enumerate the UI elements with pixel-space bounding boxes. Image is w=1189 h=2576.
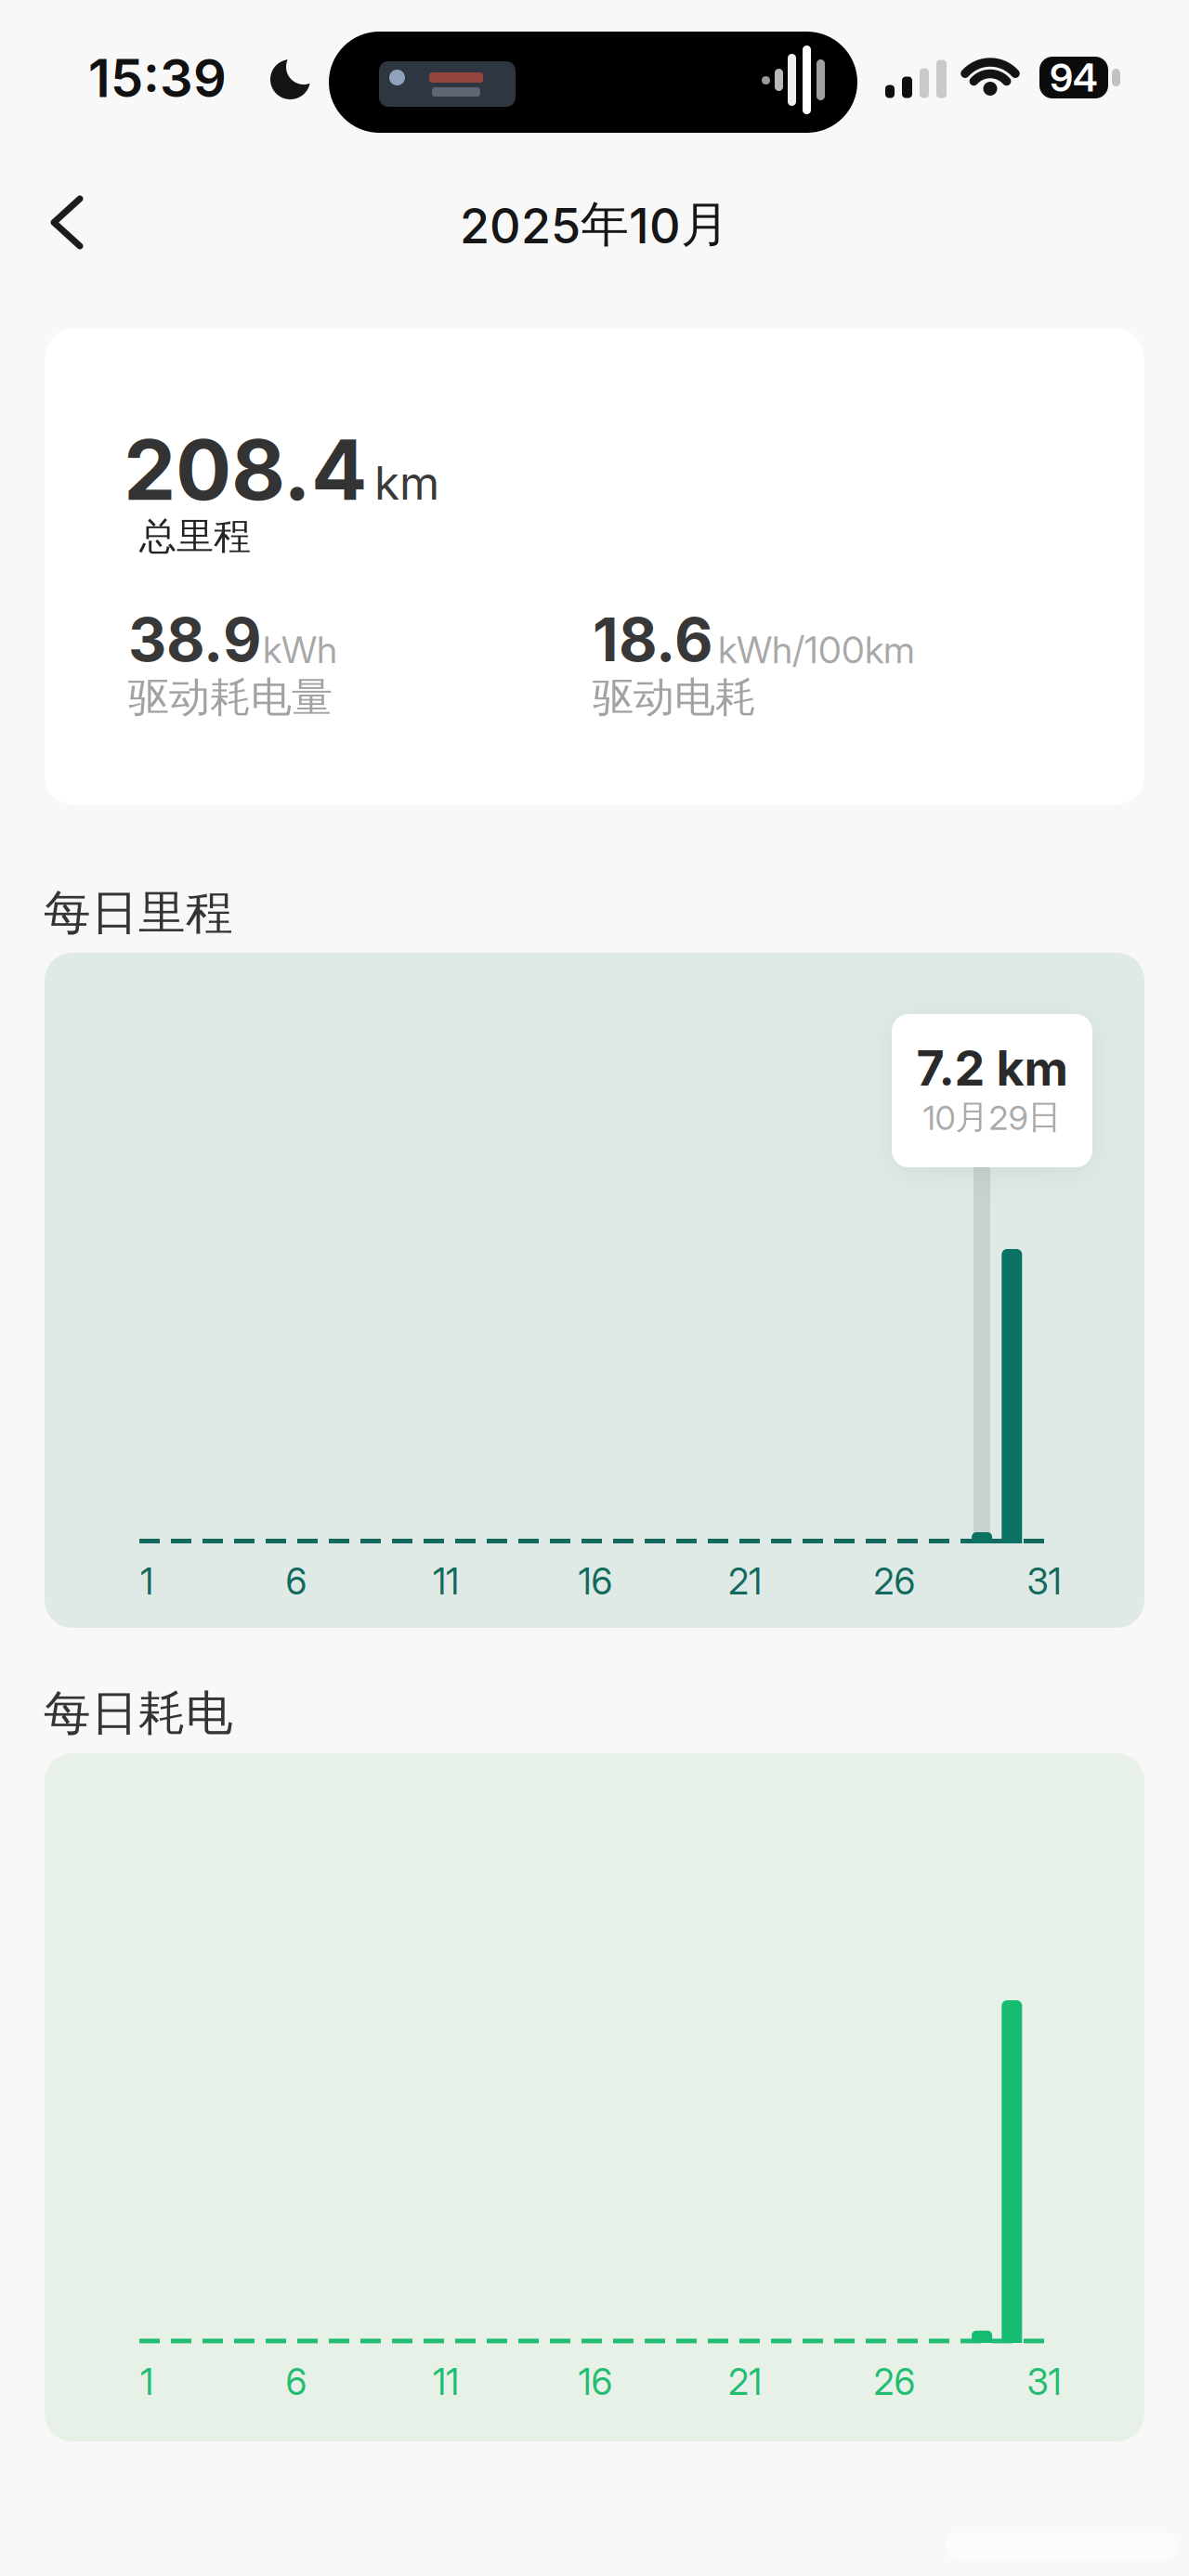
staticText: 208.4 [124, 421, 367, 519]
staticText: 11 [433, 2361, 459, 2403]
staticText: 10月29日 [923, 1097, 1061, 1138]
staticText: 18.6 [593, 605, 713, 675]
staticText: 2025年10月 [460, 195, 729, 254]
staticText: 7.2 km [916, 1039, 1068, 1096]
staticText: 94 [1050, 55, 1098, 100]
staticText: 31 [1027, 2361, 1061, 2403]
staticText: 38.9 [128, 605, 262, 675]
staticText: 1 [140, 2361, 153, 2403]
staticText: 11 [433, 1560, 459, 1603]
staticText: 总里程 [139, 514, 251, 559]
staticText: kWh [263, 628, 337, 672]
staticText: 21 [728, 1560, 762, 1603]
staticText: 21 [728, 2361, 762, 2403]
staticText: 驱动耗电量 [128, 672, 333, 722]
staticText: 每日里程 [44, 884, 233, 942]
staticText: 16 [578, 1560, 613, 1603]
staticText: km [374, 456, 439, 510]
staticText: 26 [874, 1560, 915, 1603]
staticText: 26 [874, 2361, 915, 2403]
staticText: 每日耗电 [44, 1685, 233, 1742]
staticText: 31 [1027, 1560, 1061, 1603]
staticText: 16 [578, 2361, 613, 2403]
staticText: 15:39 [88, 47, 227, 109]
staticText: 1 [140, 1560, 153, 1603]
staticText: 6 [286, 2361, 307, 2403]
staticText: 驱动电耗 [593, 672, 756, 722]
staticText: 6 [286, 1560, 307, 1603]
button[interactable]: Back [39, 176, 132, 269]
staticText: kWh/100km [718, 628, 915, 672]
